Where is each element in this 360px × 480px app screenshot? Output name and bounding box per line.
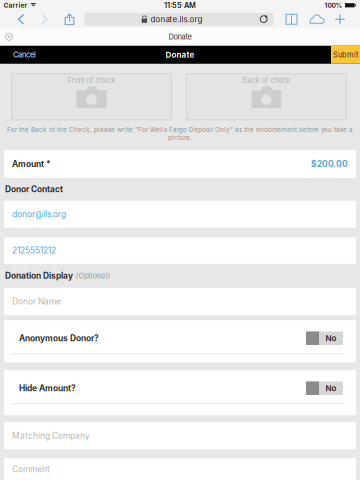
button[interactable]: Donor Name (4, 288, 356, 315)
button[interactable]: Back (10, 11, 31, 28)
staticText: Back of check (242, 76, 290, 85)
button[interactable]: Close Tab (2, 28, 16, 46)
staticText: No (325, 383, 336, 393)
staticText: Donate (165, 50, 194, 60)
button[interactable]: Hide Amount? (4, 370, 356, 415)
staticText: donate.lls.org (150, 14, 202, 24)
button[interactable]: 2125551212 (4, 237, 356, 264)
staticText: Carrier (3, 1, 27, 9)
button[interactable]: New Tab (329, 11, 350, 28)
staticText: 11:55 AM (164, 1, 196, 10)
staticText: Matching Company (12, 431, 90, 441)
staticText: Donor Name (12, 296, 61, 307)
staticText: $200.00 (311, 159, 348, 169)
button[interactable]: Front of check (11, 73, 172, 120)
staticText: No (325, 333, 336, 343)
button[interactable]: Submit (331, 46, 360, 64)
staticText: Amount * (12, 159, 51, 169)
staticText: Comment (12, 464, 50, 474)
staticText: For the Back of the Check, please write … (7, 126, 353, 134)
button[interactable]: Anonymous Donor? (4, 320, 356, 362)
staticText: Front of check (67, 76, 115, 85)
staticText: (Optional) (75, 271, 110, 280)
button[interactable]: Matching Company (4, 422, 356, 449)
staticText: Donate (168, 32, 191, 41)
staticText: 2125551212 (12, 245, 56, 256)
staticText: Donation Display (5, 271, 73, 281)
staticText: picture. (168, 134, 192, 142)
button[interactable]: Address (84, 13, 273, 26)
staticText: 100% (324, 1, 342, 9)
button[interactable]: Forward (31, 11, 57, 28)
button[interactable]: donor@lls.org (4, 201, 356, 228)
staticText: Submit (333, 50, 358, 59)
button[interactable]: Share (57, 11, 81, 28)
button[interactable]: Comment (4, 458, 356, 480)
button[interactable]: Amount * (4, 150, 356, 178)
staticText: Donor Contact (5, 184, 63, 194)
button[interactable]: Bookmarks (279, 11, 303, 28)
button[interactable]: Cancel (0, 46, 49, 64)
button[interactable]: Back of check (186, 73, 347, 120)
staticText: Hide Amount? (19, 383, 76, 393)
staticText: Cancel (13, 50, 36, 59)
staticText: donor@lls.org (12, 209, 66, 219)
button[interactable]: iCloud Tabs (303, 11, 329, 28)
staticText: Anonymous Donor? (19, 333, 99, 343)
